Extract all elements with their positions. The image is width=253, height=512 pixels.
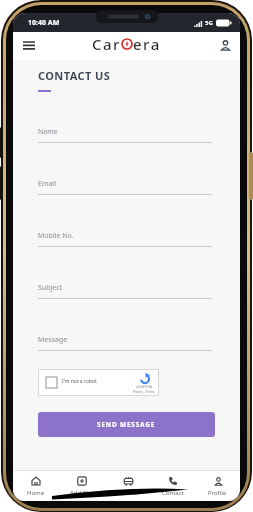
button[interactable] [216,36,234,54]
staticText: Mobile No. [38,231,74,241]
button[interactable]: Home [13,471,59,501]
staticText: Email [38,179,56,189]
staticText: Message [38,335,68,345]
staticText: Contact [162,489,184,497]
button[interactable]: Services [105,471,150,501]
button[interactable]: Car [92,34,161,54]
staticText: SEND MESSAGE [97,420,156,429]
button[interactable]: Profile [195,471,240,501]
staticText: I'm not a robot [62,378,97,385]
staticText: CONTACT US [38,68,111,83]
button[interactable]: I'm not a robot [38,369,159,396]
staticText: era [133,34,161,54]
staticText: 5G [205,19,213,27]
staticText: 10:40 AM [28,18,60,28]
staticText: Home [27,489,45,497]
button[interactable]: Contact [150,471,195,501]
staticText: reCAPTCHA [136,385,153,389]
staticText: Services [116,489,139,497]
staticText: Subject [38,283,63,293]
staticText: Profile [208,489,227,497]
button[interactable]: Add Pla.. [59,471,105,501]
button[interactable] [19,35,39,55]
staticText: Name [38,127,58,137]
staticText: Privacy - Terms [133,390,155,394]
button[interactable]: SEND MESSAGE [38,412,215,437]
staticText: Add Pla.. [70,489,95,497]
staticText: Car [92,34,121,54]
